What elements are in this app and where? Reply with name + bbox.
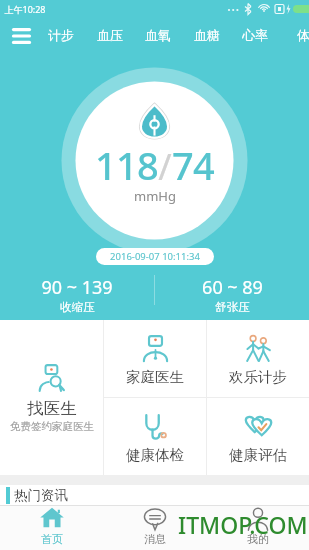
- button[interactable]: 计步: [37, 21, 85, 48]
- staticText: 计步: [48, 27, 74, 43]
- staticText: 2016-09-07 10:11:34: [110, 250, 200, 263]
- button[interactable]: 健康体检: [104, 398, 206, 475]
- button[interactable]: 血压: [86, 21, 134, 48]
- button[interactable]: 心率: [231, 21, 279, 48]
- staticText: 舒张压: [215, 300, 250, 314]
- staticText: 74: [172, 139, 214, 191]
- staticText: 60 ~ 89: [202, 275, 263, 300]
- staticText: 消息: [144, 532, 166, 546]
- staticText: ITMOP.COM: [178, 509, 308, 540]
- staticText: 我的: [247, 532, 269, 546]
- button[interactable]: 家庭医生: [104, 320, 206, 397]
- button[interactable]: 消息: [103, 506, 206, 550]
- staticText: 收缩压: [60, 300, 95, 314]
- staticText: 家庭医生: [126, 368, 184, 386]
- staticText: 首页: [41, 532, 63, 546]
- staticText: 血氧: [145, 27, 171, 43]
- staticText: 体重: [297, 27, 309, 43]
- staticText: 90 ~ 139: [41, 275, 113, 300]
- staticText: 免费签约家庭医生: [10, 420, 94, 433]
- staticText: 血压: [97, 27, 123, 43]
- staticText: 热门资讯: [14, 487, 68, 504]
- staticText: 找医生: [27, 398, 77, 419]
- button[interactable]: 血氧: [134, 21, 182, 48]
- button[interactable]: 健康评估: [207, 398, 309, 475]
- staticText: 118: [95, 139, 158, 191]
- staticText: 欢乐计步: [229, 368, 287, 386]
- button[interactable]: 首页: [0, 506, 103, 550]
- staticText: 上午10:28: [4, 3, 46, 15]
- button[interactable]: 体重: [286, 21, 309, 48]
- button[interactable]: 血糖: [183, 21, 231, 48]
- staticText: mmHg: [134, 187, 176, 205]
- button[interactable]: 2016-09-07 10:11:34: [96, 248, 214, 265]
- staticText: 血糖: [194, 27, 220, 43]
- button[interactable]: 我的: [206, 506, 309, 550]
- staticText: 健康评估: [229, 446, 287, 464]
- staticText: /: [158, 142, 172, 191]
- staticText: 健康体检: [126, 446, 184, 464]
- button[interactable]: 欢乐计步: [207, 320, 309, 397]
- staticText: 心率: [242, 27, 268, 43]
- button[interactable]: Menu: [4, 22, 38, 50]
- button[interactable]: 找医生: [0, 320, 103, 475]
